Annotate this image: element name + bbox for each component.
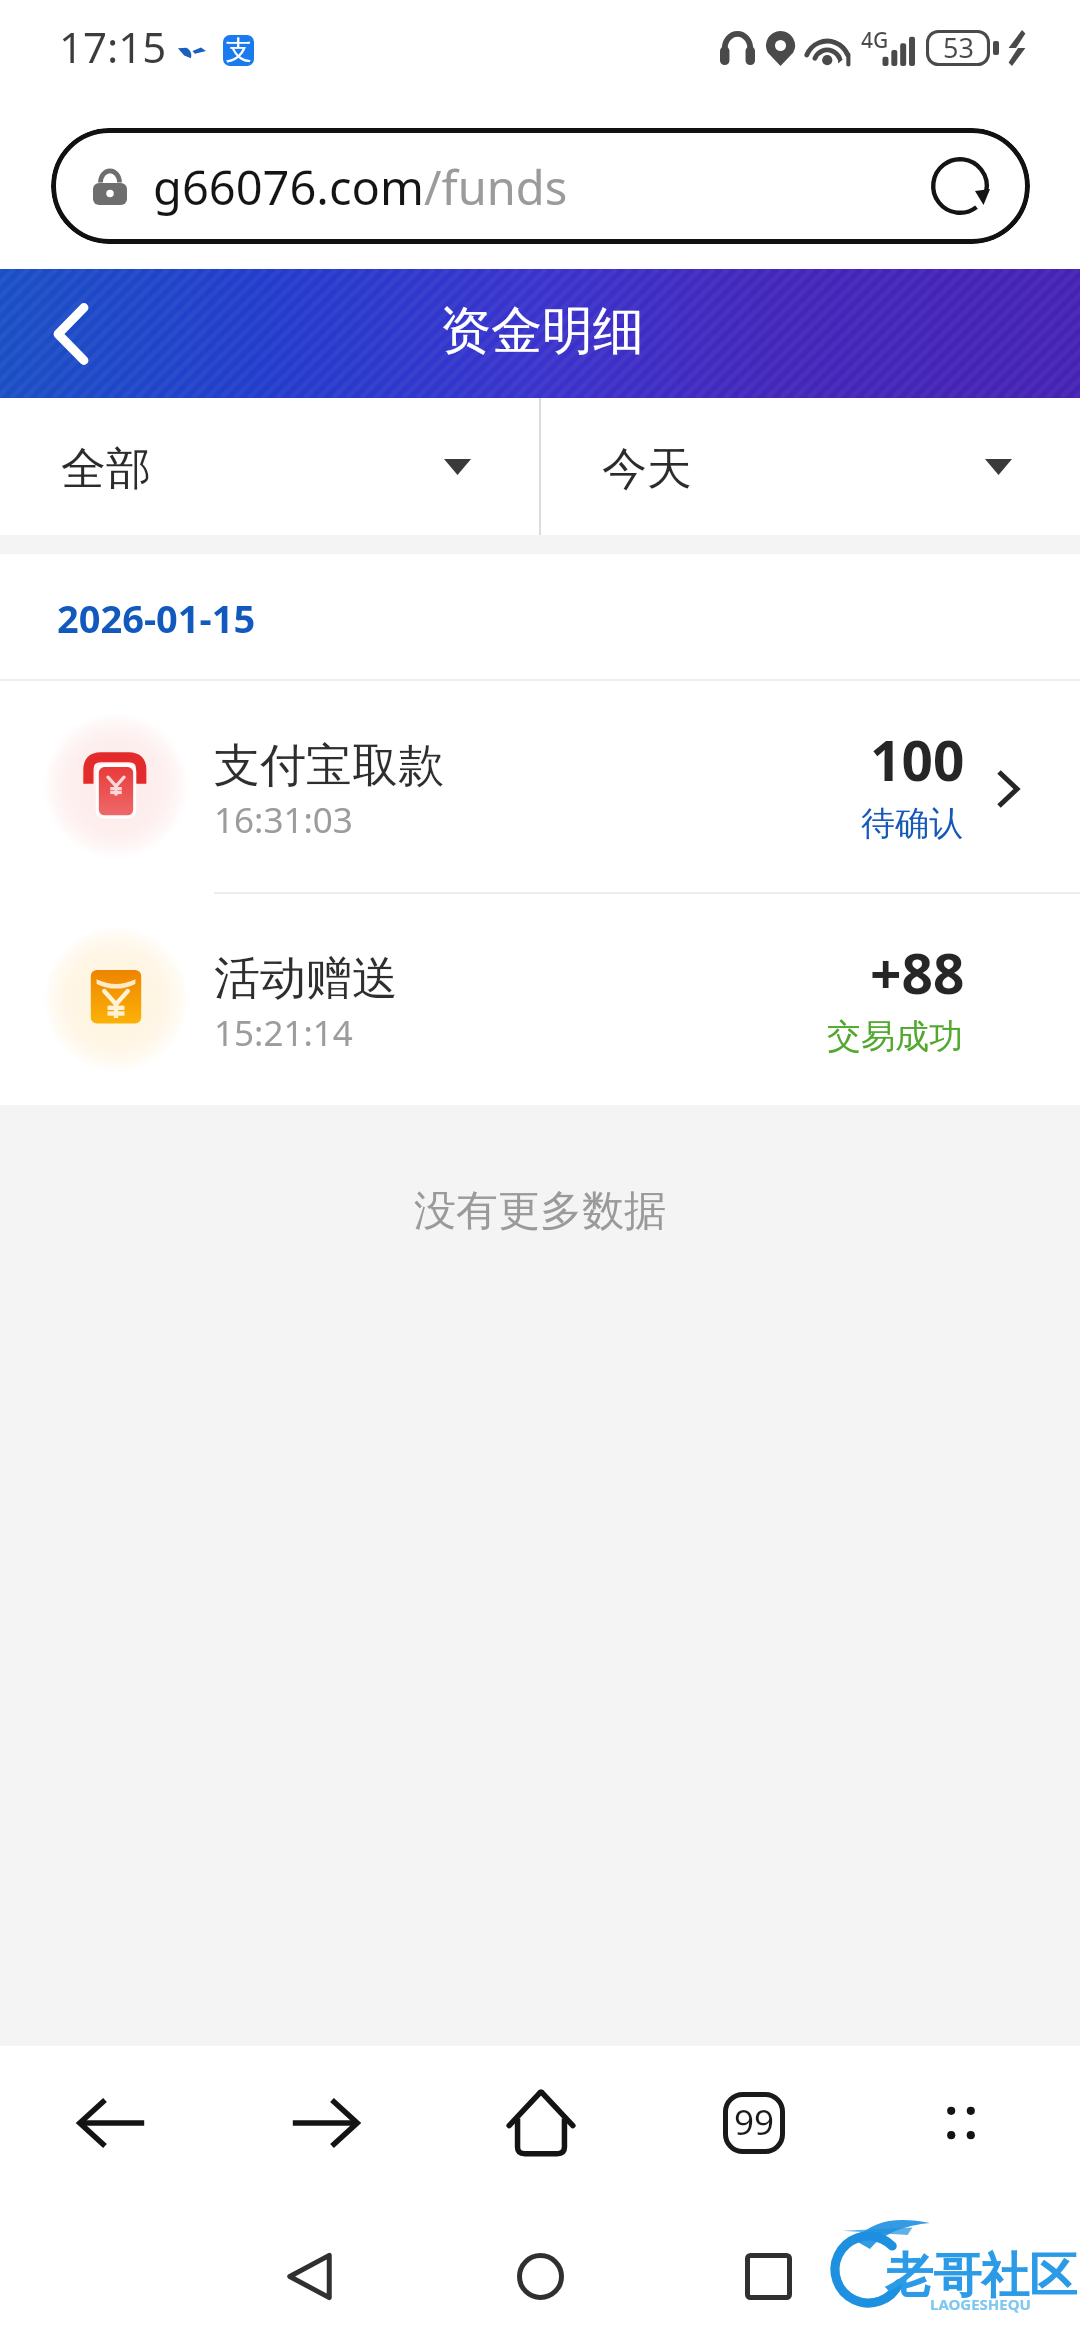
other: Details bbox=[997, 770, 1019, 808]
staticText: 支付宝取款 bbox=[214, 737, 444, 795]
staticText: 4G bbox=[861, 26, 889, 55]
staticText: 活动赠送 bbox=[214, 950, 398, 1008]
staticText: g66076.com bbox=[153, 155, 424, 219]
staticText: 资金明细 bbox=[440, 299, 644, 363]
button[interactable]: Menu bbox=[885, 2046, 1037, 2200]
button[interactable]: Home bbox=[465, 2046, 617, 2200]
button[interactable]: Back bbox=[24, 269, 118, 398]
button[interactable]: 活动赠送 bbox=[0, 894, 1080, 1105]
staticText: /funds bbox=[424, 155, 568, 219]
staticText: 17:15 bbox=[59, 18, 167, 75]
staticText: +88 bbox=[870, 935, 965, 1010]
staticText: 全部 bbox=[61, 441, 151, 498]
staticText: 支 bbox=[226, 35, 252, 65]
other: Reload bbox=[931, 157, 989, 215]
staticText: 交易成功 bbox=[827, 1015, 963, 1058]
staticText: 100 bbox=[870, 722, 965, 797]
button[interactable]: Recents bbox=[698, 2206, 838, 2340]
button[interactable]: Back bbox=[36, 2046, 188, 2200]
staticText: 15:21:14 bbox=[214, 1009, 353, 1057]
button[interactable]: Forward bbox=[249, 2046, 401, 2200]
staticText: 没有更多数据 bbox=[0, 1185, 1080, 1238]
button[interactable]: 支付宝取款 bbox=[0, 681, 1080, 892]
button[interactable]: g66076.com bbox=[51, 128, 1030, 244]
staticText: 99 bbox=[734, 2098, 775, 2146]
staticText: 今天 bbox=[602, 441, 692, 498]
staticText: LAOGESHEQU bbox=[930, 2294, 1031, 2314]
button[interactable]: Tabs bbox=[678, 2046, 830, 2200]
staticText: 53 bbox=[943, 29, 974, 65]
staticText: 老哥社区 bbox=[885, 2246, 1077, 2306]
staticText: 待确认 bbox=[861, 802, 963, 845]
button[interactable]: 全部 bbox=[0, 398, 539, 535]
button[interactable]: Back bbox=[239, 2206, 379, 2340]
button[interactable]: Home bbox=[470, 2206, 610, 2340]
button[interactable]: 今天 bbox=[541, 398, 1080, 535]
staticText: 2026-01-15 bbox=[57, 592, 256, 644]
staticText: 16:31:03 bbox=[214, 796, 353, 844]
